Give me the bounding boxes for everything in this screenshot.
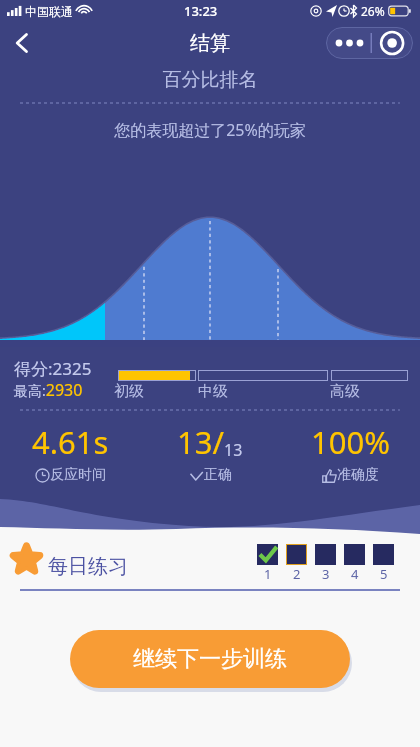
staticText: 继续下一步训练	[133, 645, 287, 673]
staticText: 4.61s	[32, 421, 109, 463]
staticText: 5	[380, 565, 388, 583]
staticText: 26%	[361, 3, 385, 19]
button[interactable]	[331, 370, 408, 381]
staticText: 13/13	[177, 421, 243, 463]
staticText: 中国联通	[25, 4, 73, 19]
staticText: 100%	[311, 421, 390, 463]
staticText: 13:23	[184, 2, 218, 20]
staticText: 每日练习	[48, 554, 128, 579]
staticText: 结算	[190, 31, 230, 56]
staticText: 反应时间	[50, 466, 106, 484]
staticText: 1	[264, 565, 272, 583]
staticText: 得分:2325	[14, 357, 92, 380]
button[interactable]: Day 1	[257, 544, 278, 565]
button[interactable]: Day 2	[286, 544, 307, 565]
staticText: 最高:2930	[14, 379, 83, 401]
button[interactable]	[198, 370, 328, 381]
button[interactable]: Menu	[326, 27, 413, 59]
staticText: 正确	[204, 466, 232, 484]
staticText: 中级	[198, 382, 228, 401]
button[interactable]: Back	[2, 23, 42, 63]
staticText: 您的表现超过了25%的玩家	[0, 119, 420, 141]
staticText: 高级	[330, 382, 360, 401]
button[interactable]: 继续下一步训练	[70, 630, 350, 688]
staticText: 4	[351, 565, 359, 583]
staticText: 2	[293, 565, 301, 583]
staticText: 初级	[114, 382, 144, 401]
button[interactable]	[118, 370, 196, 381]
staticText: 准确度	[337, 466, 379, 484]
staticText: 百分比排名	[0, 68, 420, 92]
staticText: 3	[322, 565, 330, 583]
